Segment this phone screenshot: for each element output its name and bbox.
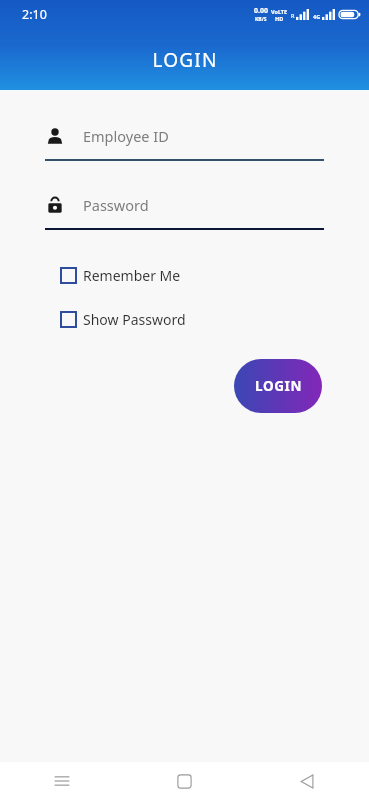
other: User: [45, 126, 65, 146]
button[interactable]: LOGIN: [234, 359, 322, 413]
staticText: 2:10: [22, 6, 47, 23]
staticText: LOGIN: [255, 377, 302, 395]
staticText: 0.00: [254, 6, 268, 16]
staticText: VoLTE: [271, 8, 288, 15]
button[interactable]: Back: [246, 762, 369, 800]
staticText: Show Password: [83, 310, 186, 329]
button[interactable]: Home: [123, 762, 246, 800]
staticText: HD: [275, 15, 284, 22]
staticText: Remember Me: [83, 266, 181, 285]
other: Password: [45, 195, 65, 215]
button[interactable]: Remember Me: [60, 263, 181, 287]
staticText: Employee ID: [83, 126, 169, 146]
staticText: LOGIN: [152, 47, 218, 73]
staticText: R: [291, 12, 295, 19]
staticText: 4G: [313, 13, 321, 20]
button[interactable]: Show Password: [60, 307, 186, 331]
button[interactable]: Password: [45, 191, 324, 219]
staticText: Password: [83, 195, 149, 215]
staticText: KB/S: [255, 16, 267, 23]
button[interactable]: User: [45, 122, 324, 150]
button[interactable]: Recent apps: [0, 762, 123, 800]
